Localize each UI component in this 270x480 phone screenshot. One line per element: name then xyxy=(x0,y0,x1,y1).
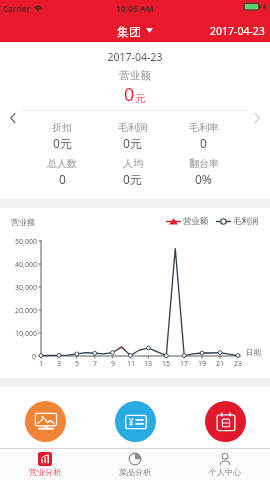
button[interactable]: Next day xyxy=(248,109,266,127)
staticText: 毛利润 xyxy=(118,121,148,134)
staticText: 10,000 xyxy=(15,329,37,339)
staticText: 50,000 xyxy=(15,237,37,247)
button[interactable]: 集团 xyxy=(117,24,153,39)
staticText: 元 xyxy=(135,92,146,105)
staticText: 9 xyxy=(111,359,116,369)
staticText: 21 xyxy=(216,359,225,369)
button[interactable]: Bills xyxy=(115,401,156,442)
staticText: 20,000 xyxy=(15,306,37,316)
staticText: 0% xyxy=(195,171,212,187)
staticText: 2017-04-23 xyxy=(0,50,270,64)
staticText: 折扣 xyxy=(52,121,72,134)
staticText: 营业分析 xyxy=(29,467,61,477)
staticText: 0 xyxy=(32,352,37,362)
button[interactable]: Previous day xyxy=(4,109,22,127)
staticText: 3 xyxy=(57,359,62,369)
button[interactable]: 营业分析 xyxy=(0,449,90,480)
staticText: 0 xyxy=(124,82,135,107)
button[interactable]: 个人中心 xyxy=(180,449,270,480)
staticText: 0 xyxy=(59,171,66,187)
staticText: 毛利率 xyxy=(189,121,219,134)
staticText: 菜品分析 xyxy=(119,467,151,477)
staticText: 5 xyxy=(75,359,80,369)
staticText: 17 xyxy=(180,359,189,369)
staticText: 人均 xyxy=(123,157,143,170)
staticText: 0元 xyxy=(123,135,142,151)
staticText: 营业额 xyxy=(183,216,209,227)
button[interactable]: Calendar xyxy=(205,401,246,442)
button[interactable]: 2017-04-23 xyxy=(210,24,265,38)
staticText: 23 xyxy=(234,359,243,369)
staticText: 营业额 xyxy=(0,69,270,82)
button[interactable]: 菜品分析 xyxy=(90,449,180,480)
staticText: 1 xyxy=(39,359,44,369)
staticText: 2017-04-23 xyxy=(210,24,265,38)
staticText: 集团 xyxy=(117,24,141,39)
staticText: 日期 xyxy=(246,348,261,357)
staticText: Carrier xyxy=(3,3,31,14)
staticText: 13 xyxy=(144,359,153,369)
staticText: 10:05 AM xyxy=(116,3,154,15)
staticText: 11 xyxy=(127,359,136,369)
staticText: 0 xyxy=(200,135,207,151)
staticText: 毛利润 xyxy=(233,216,259,227)
staticText: 19 xyxy=(198,359,207,369)
staticText: 7 xyxy=(93,359,98,369)
staticText: 30,000 xyxy=(15,283,37,293)
staticText: 个人中心 xyxy=(209,467,241,477)
staticText: 营业额 xyxy=(11,217,35,227)
staticText: 总人数 xyxy=(47,157,77,170)
staticText: 0元 xyxy=(53,135,72,151)
staticText: 0元 xyxy=(123,171,142,187)
staticText: 15 xyxy=(162,359,171,369)
staticText: 40,000 xyxy=(15,260,37,270)
staticText: 翻台率 xyxy=(189,157,219,170)
button[interactable]: Business report xyxy=(25,401,66,442)
